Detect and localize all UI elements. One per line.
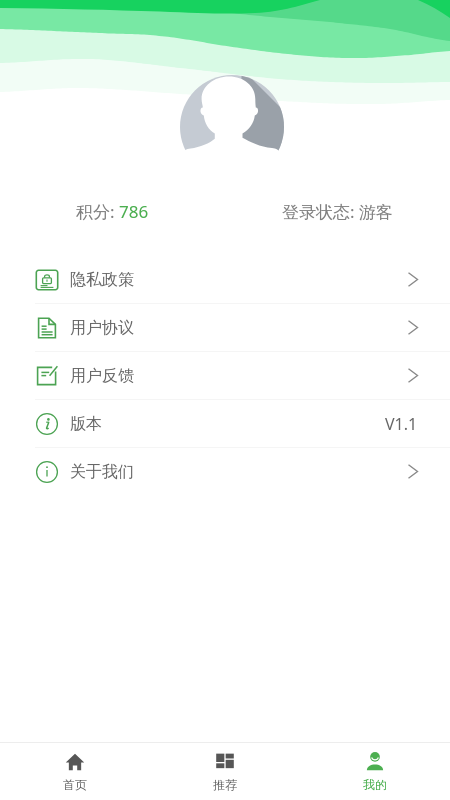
staticText: 版本: [70, 414, 102, 434]
staticText: 隐私政策: [70, 270, 134, 290]
staticText: 积分:: [76, 200, 119, 223]
staticText: 用户协议: [70, 318, 134, 338]
button[interactable]: 推荐: [150, 743, 300, 800]
staticText: V1.1: [385, 413, 418, 435]
button[interactable]: 关于我们: [0, 448, 450, 495]
button[interactable]: 首页: [0, 743, 150, 800]
button[interactable]: 隐私政策: [0, 256, 450, 303]
staticText: 首页: [63, 777, 87, 792]
button[interactable]: 用户协议: [0, 304, 450, 351]
button[interactable]: 版本: [0, 400, 450, 447]
staticText: 786: [119, 200, 149, 223]
staticText: 我的: [363, 777, 387, 792]
staticText: 关于我们: [70, 462, 134, 482]
staticText: 推荐: [213, 777, 237, 792]
button[interactable]: 我的: [300, 743, 450, 800]
button[interactable]: 用户反馈: [0, 352, 450, 399]
staticText: 用户反馈: [70, 366, 134, 386]
staticText: 登录状态: 游客: [282, 200, 393, 223]
